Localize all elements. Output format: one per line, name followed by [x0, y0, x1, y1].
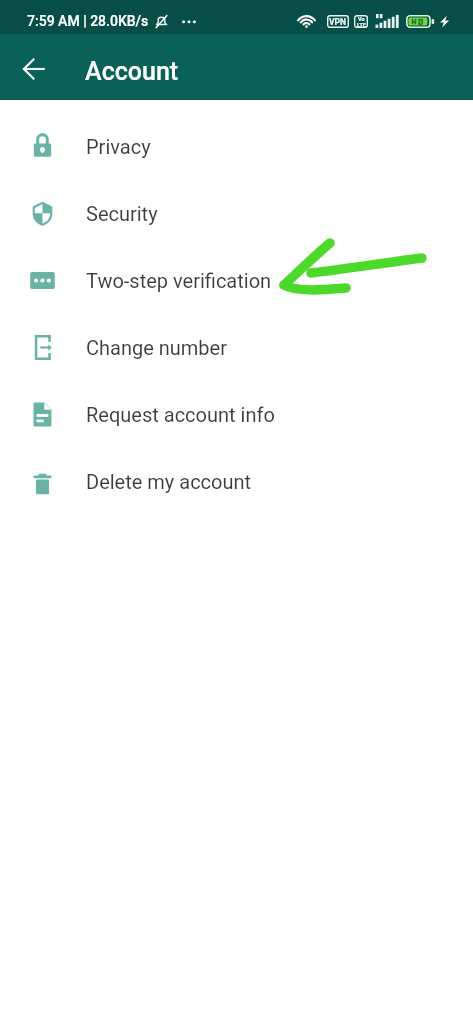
staticText: Account: [85, 57, 179, 86]
button[interactable]: Request account info: [0, 381, 473, 448]
button[interactable]: Privacy: [0, 113, 473, 180]
staticText: Request account info: [86, 403, 275, 426]
button[interactable]: Security: [0, 180, 473, 247]
staticText: Vo: [358, 16, 365, 22]
button[interactable]: Back: [12, 47, 56, 91]
staticText: 7:59 AM | 28.0KB/s: [27, 13, 149, 29]
staticText: Privacy: [86, 135, 151, 158]
staticText: Delete my account: [86, 470, 252, 493]
staticText: Security: [86, 202, 158, 225]
button[interactable]: Two-step verification: [0, 247, 473, 314]
staticText: Two-step verification: [86, 269, 272, 292]
staticText: Change number: [86, 336, 227, 359]
staticText: VPN: [329, 17, 347, 27]
staticText: LTE: [357, 22, 366, 28]
button[interactable]: Change number: [0, 314, 473, 381]
button[interactable]: Delete my account: [0, 448, 473, 515]
